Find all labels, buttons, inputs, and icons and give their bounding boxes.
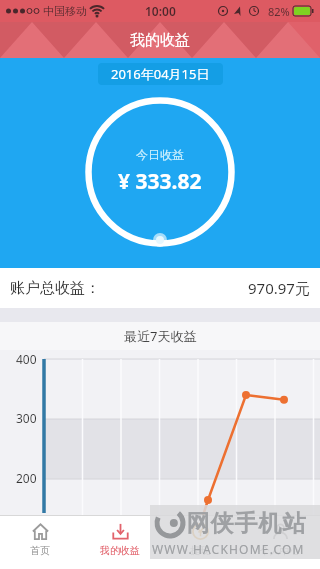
staticText: 个人中心 [260, 544, 300, 557]
staticText: 今日收益 [136, 147, 184, 162]
staticText: ¥ 333.82 [118, 167, 202, 196]
button[interactable]: 账户总收益： [10, 268, 310, 308]
staticText: 账户总收益： [10, 279, 100, 298]
button[interactable]: 首页 [0, 516, 80, 569]
staticText: 首页 [30, 544, 50, 557]
staticText: 300 [16, 410, 37, 426]
staticText: WWW.HACKHOME.COM [152, 541, 305, 557]
staticText: 82% [268, 4, 293, 19]
button[interactable]: 2016年04月15日 [111, 65, 210, 83]
staticText: 提现 [190, 544, 210, 557]
staticText: 中国移动 [43, 4, 87, 18]
staticText: 最近7天收益 [124, 327, 197, 345]
staticText: 200 [16, 470, 37, 486]
staticText: 400 [16, 351, 37, 367]
staticText: 970.97元 [248, 278, 310, 298]
staticText: 我的收益 [100, 544, 140, 557]
staticText: 网侠手机站 [186, 509, 306, 538]
button[interactable]: 提现 [160, 516, 240, 569]
button[interactable]: 个人中心 [240, 516, 320, 569]
staticText: 我的收益 [130, 31, 190, 50]
button[interactable]: 我的收益 [80, 516, 160, 569]
staticText: 10:00 [145, 3, 176, 19]
staticText: 2016年04月15日 [111, 65, 210, 83]
